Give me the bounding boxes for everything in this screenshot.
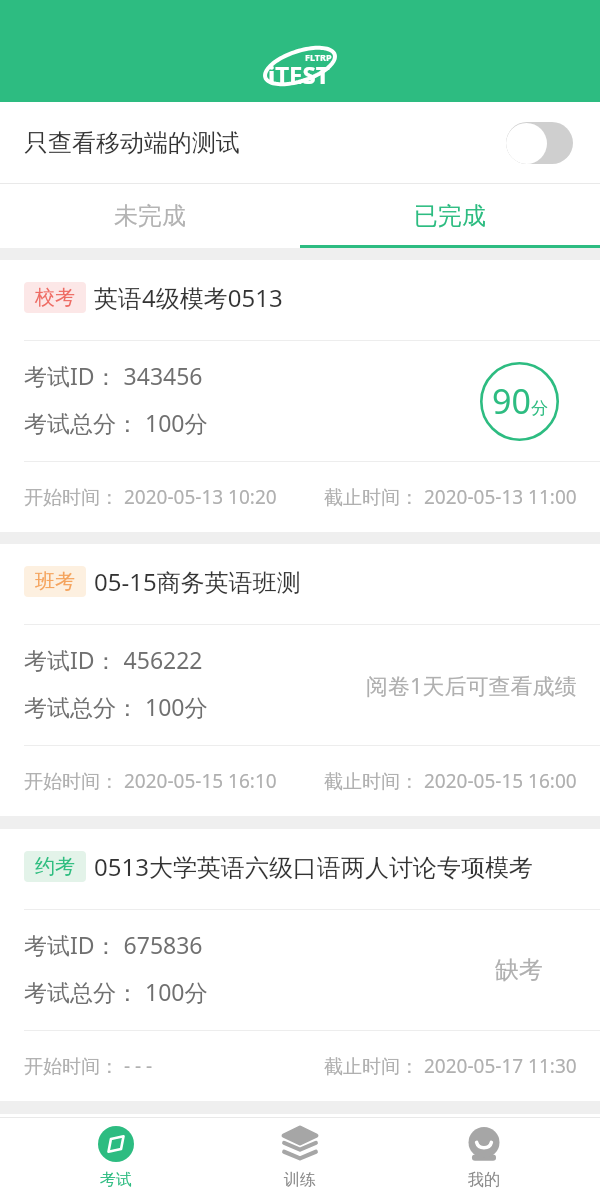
staticText: 05-15商务英语班测 xyxy=(94,565,301,598)
staticText: 考试总分： 100分 xyxy=(24,407,208,438)
staticText: 考试ID： 456222 xyxy=(24,644,203,675)
staticText: 阅卷1天后可查看成绩 xyxy=(366,670,577,700)
staticText: 考试 xyxy=(100,1170,132,1190)
staticText: 我的 xyxy=(468,1170,500,1190)
staticText: 开始时间： 2020-05-15 16:10 xyxy=(24,768,277,794)
staticText: 考试总分： 100分 xyxy=(24,976,208,1007)
button[interactable]: 校考 xyxy=(0,260,600,532)
staticText: 班考 xyxy=(35,569,75,594)
staticText: 0513大学英语六级口语两人讨论专项模考 xyxy=(94,850,533,883)
button[interactable]: 考试 xyxy=(24,1117,208,1194)
button[interactable]: 班考 xyxy=(0,544,600,816)
staticText: 校考 xyxy=(35,285,75,310)
staticText: 考试总分： 100分 xyxy=(24,691,208,722)
staticText: 只查看移动端的测试 xyxy=(24,128,240,158)
staticText: 英语4级模考0513 xyxy=(94,281,283,314)
staticText: 训练 xyxy=(284,1170,316,1190)
staticText: 开始时间： - - - xyxy=(24,1053,153,1079)
staticText: FLTRP xyxy=(305,51,332,63)
staticText: 90 xyxy=(492,378,531,424)
staticText: 约考 xyxy=(35,854,75,879)
staticText: 考试ID： 343456 xyxy=(24,360,203,391)
button[interactable]: 约考 xyxy=(0,829,600,1101)
staticText: 未完成 xyxy=(114,201,186,231)
staticText: 已完成 xyxy=(414,201,486,231)
button[interactable]: 已完成 xyxy=(300,184,600,248)
button[interactable]: 我的 xyxy=(392,1117,576,1194)
staticText: 截止时间： 2020-05-13 11:00 xyxy=(324,484,577,510)
staticText: 截止时间： 2020-05-15 16:00 xyxy=(324,768,577,794)
staticText: 缺考 xyxy=(495,955,543,985)
staticText: 考试ID： 675836 xyxy=(24,929,203,960)
button[interactable]: 训练 xyxy=(208,1117,392,1194)
staticText: 截止时间： 2020-05-17 11:30 xyxy=(324,1053,577,1079)
button[interactable]: Only show mobile tests toggle xyxy=(506,122,573,164)
staticText: 开始时间： 2020-05-13 10:20 xyxy=(24,484,277,510)
staticText: iTEST xyxy=(268,58,330,91)
staticText: 分 xyxy=(531,398,548,419)
button[interactable]: 未完成 xyxy=(0,184,300,248)
